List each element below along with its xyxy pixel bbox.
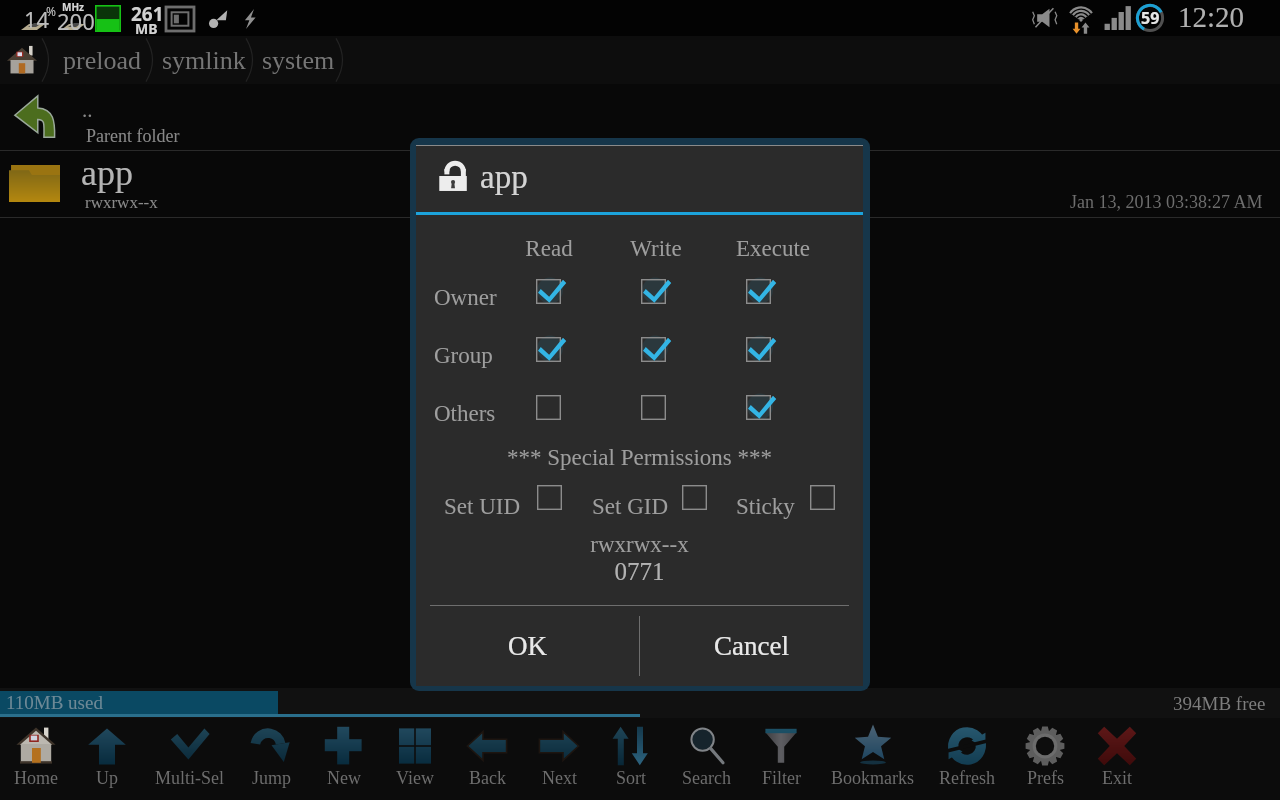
staticText: rwxrwx--x bbox=[416, 532, 863, 557]
staticText: Cancel bbox=[714, 631, 789, 661]
button[interactable]: app bbox=[0, 151, 1280, 218]
staticText: Bookmarks bbox=[831, 768, 914, 788]
button[interactable]: Next bbox=[515, 718, 603, 800]
staticText: Parent folder bbox=[86, 126, 180, 146]
staticText: Group bbox=[434, 343, 493, 368]
staticText: app bbox=[81, 153, 133, 193]
button[interactable]: Multi-Sel bbox=[146, 718, 234, 800]
staticText: *** Special Permissions *** bbox=[416, 445, 863, 470]
button[interactable]: Owner permission bbox=[746, 279, 771, 304]
staticText: Search bbox=[682, 768, 731, 788]
button[interactable]: .. bbox=[0, 84, 1280, 151]
button[interactable]: Others permission bbox=[641, 395, 666, 420]
staticText: 200 bbox=[57, 6, 95, 36]
staticText: Multi-Sel bbox=[155, 768, 225, 788]
staticText: 261 bbox=[131, 1, 164, 27]
button[interactable]: View bbox=[371, 718, 459, 800]
button[interactable]: Filter bbox=[737, 718, 825, 800]
button[interactable]: Bookmarks bbox=[828, 718, 916, 800]
staticText: Execute bbox=[733, 236, 813, 261]
button[interactable]: Group permission bbox=[641, 337, 666, 362]
staticText: 0771 bbox=[416, 558, 863, 586]
button[interactable]: Owner permission bbox=[641, 279, 666, 304]
button[interactable]: symlink bbox=[162, 46, 246, 75]
button[interactable]: Prefs bbox=[1001, 718, 1089, 800]
button[interactable]: Home folder bbox=[6, 44, 38, 76]
button[interactable]: Back bbox=[443, 718, 531, 800]
staticText: Prefs bbox=[1027, 768, 1064, 788]
button[interactable]: Up bbox=[63, 718, 151, 800]
staticText: rwxrwx--x bbox=[85, 193, 158, 212]
staticText: Sort bbox=[616, 768, 647, 788]
staticText: Next bbox=[542, 768, 577, 788]
staticText: 12:20 bbox=[1178, 1, 1245, 33]
button[interactable]: OK bbox=[416, 606, 639, 686]
button[interactable]: Sort bbox=[587, 718, 675, 800]
button[interactable]: Set GID bbox=[682, 485, 707, 510]
staticText: % bbox=[46, 3, 56, 19]
staticText: OK bbox=[508, 631, 547, 661]
staticText: Jan 13, 2013 03:38:27 AM bbox=[1070, 192, 1263, 212]
staticText: View bbox=[396, 768, 434, 788]
staticText: app bbox=[480, 159, 528, 196]
staticText: 59 bbox=[1141, 7, 1160, 29]
button[interactable]: Jump bbox=[228, 718, 316, 800]
staticText: .. bbox=[82, 98, 93, 121]
staticText: Exit bbox=[1102, 768, 1132, 788]
staticText: MB bbox=[135, 19, 158, 38]
staticText: Sticky bbox=[736, 494, 795, 519]
button[interactable]: Home bbox=[0, 718, 80, 800]
staticText: New bbox=[327, 768, 361, 788]
button[interactable]: Others permission bbox=[536, 395, 561, 420]
staticText: Home bbox=[14, 768, 58, 788]
staticText: Set GID bbox=[592, 494, 669, 519]
staticText: MHz bbox=[62, 0, 85, 14]
staticText: Owner bbox=[434, 285, 497, 310]
staticText: 14 bbox=[24, 4, 50, 34]
button[interactable]: preload bbox=[63, 46, 141, 75]
staticText: Write bbox=[616, 236, 696, 261]
button[interactable]: Exit bbox=[1073, 718, 1161, 800]
staticText: Read bbox=[509, 236, 589, 261]
button[interactable]: Cancel bbox=[640, 606, 863, 686]
button[interactable]: Search bbox=[662, 718, 750, 800]
staticText: Others bbox=[434, 401, 496, 426]
button[interactable]: Set UID bbox=[537, 485, 562, 510]
staticText: 110MB used bbox=[6, 692, 103, 713]
staticText: Filter bbox=[762, 768, 801, 788]
button[interactable]: Others permission bbox=[746, 395, 771, 420]
staticText: Back bbox=[469, 768, 506, 788]
button[interactable]: Sticky bbox=[810, 485, 835, 510]
staticText: Refresh bbox=[939, 768, 995, 788]
staticText: Jump bbox=[252, 768, 292, 788]
button[interactable]: Group permission bbox=[746, 337, 771, 362]
button[interactable]: New bbox=[300, 718, 388, 800]
staticText: Up bbox=[96, 768, 118, 788]
button[interactable]: Refresh bbox=[923, 718, 1011, 800]
button[interactable]: Owner permission bbox=[536, 279, 561, 304]
staticText: Set UID bbox=[444, 494, 521, 519]
button[interactable]: Group permission bbox=[536, 337, 561, 362]
button[interactable]: system bbox=[262, 46, 335, 75]
staticText: 394MB free bbox=[1173, 693, 1266, 714]
